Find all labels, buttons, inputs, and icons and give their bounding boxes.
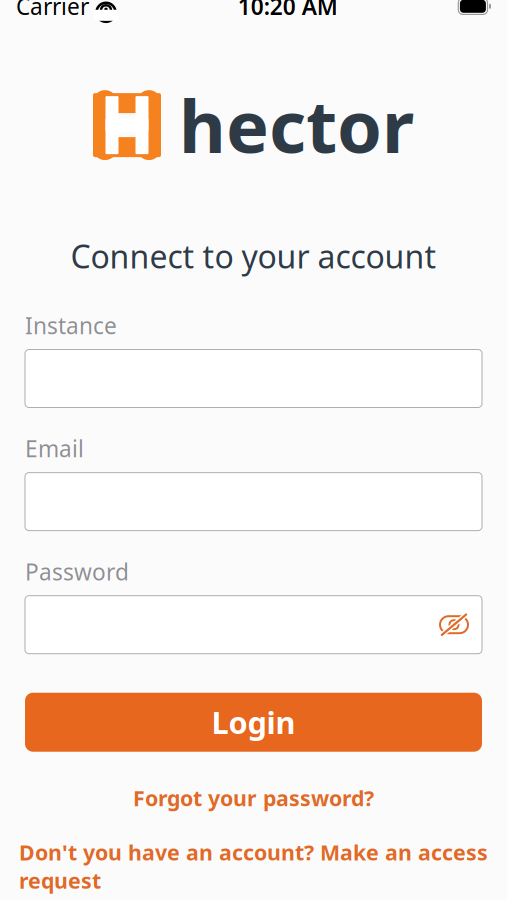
button[interactable]: Don't you have an account? Make an acces… — [5, 832, 502, 900]
staticText: Instance — [25, 310, 117, 340]
button[interactable]: Forgot your password? — [119, 778, 388, 818]
staticText: Connect to your account — [70, 235, 436, 277]
staticText: Don't you have an account? Make an acces… — [19, 838, 488, 895]
staticText: 10:20 AM — [238, 0, 338, 21]
staticText: Login — [211, 702, 295, 742]
staticText: Email — [25, 433, 84, 464]
staticText: hector — [179, 77, 414, 173]
staticText: Forgot your password? — [133, 784, 374, 812]
staticText: Carrier — [16, 0, 89, 21]
button[interactable]: Login — [25, 693, 482, 752]
staticText: Password — [25, 557, 129, 587]
button[interactable]: Show password — [432, 603, 476, 647]
